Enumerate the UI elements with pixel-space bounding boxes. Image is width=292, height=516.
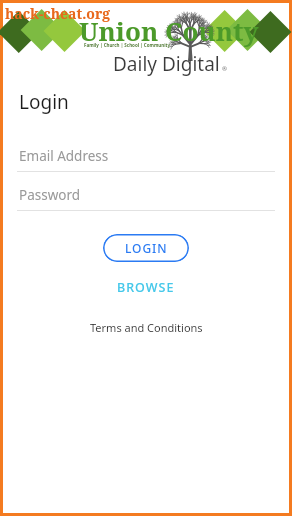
staticText: Daily Digital [113,51,220,77]
staticText: BROWSE [117,279,175,296]
staticText: hack-cheat.org [5,4,111,23]
button[interactable]: BROWSE [103,275,189,300]
button[interactable]: Password [3,180,289,211]
staticText: Password [19,186,81,204]
button[interactable]: Email Address [3,141,289,172]
staticText: Family | Church | School | Community [84,42,171,48]
staticText: Union County [79,13,259,48]
staticText: ® [222,65,227,73]
staticText: Login [19,89,69,115]
staticText: LOGIN [125,240,168,256]
button[interactable]: Terms and Conditions [80,317,213,338]
staticText: Terms and Conditions [90,320,203,335]
staticText: Email Address [19,147,109,165]
button[interactable]: LOGIN [103,234,189,262]
